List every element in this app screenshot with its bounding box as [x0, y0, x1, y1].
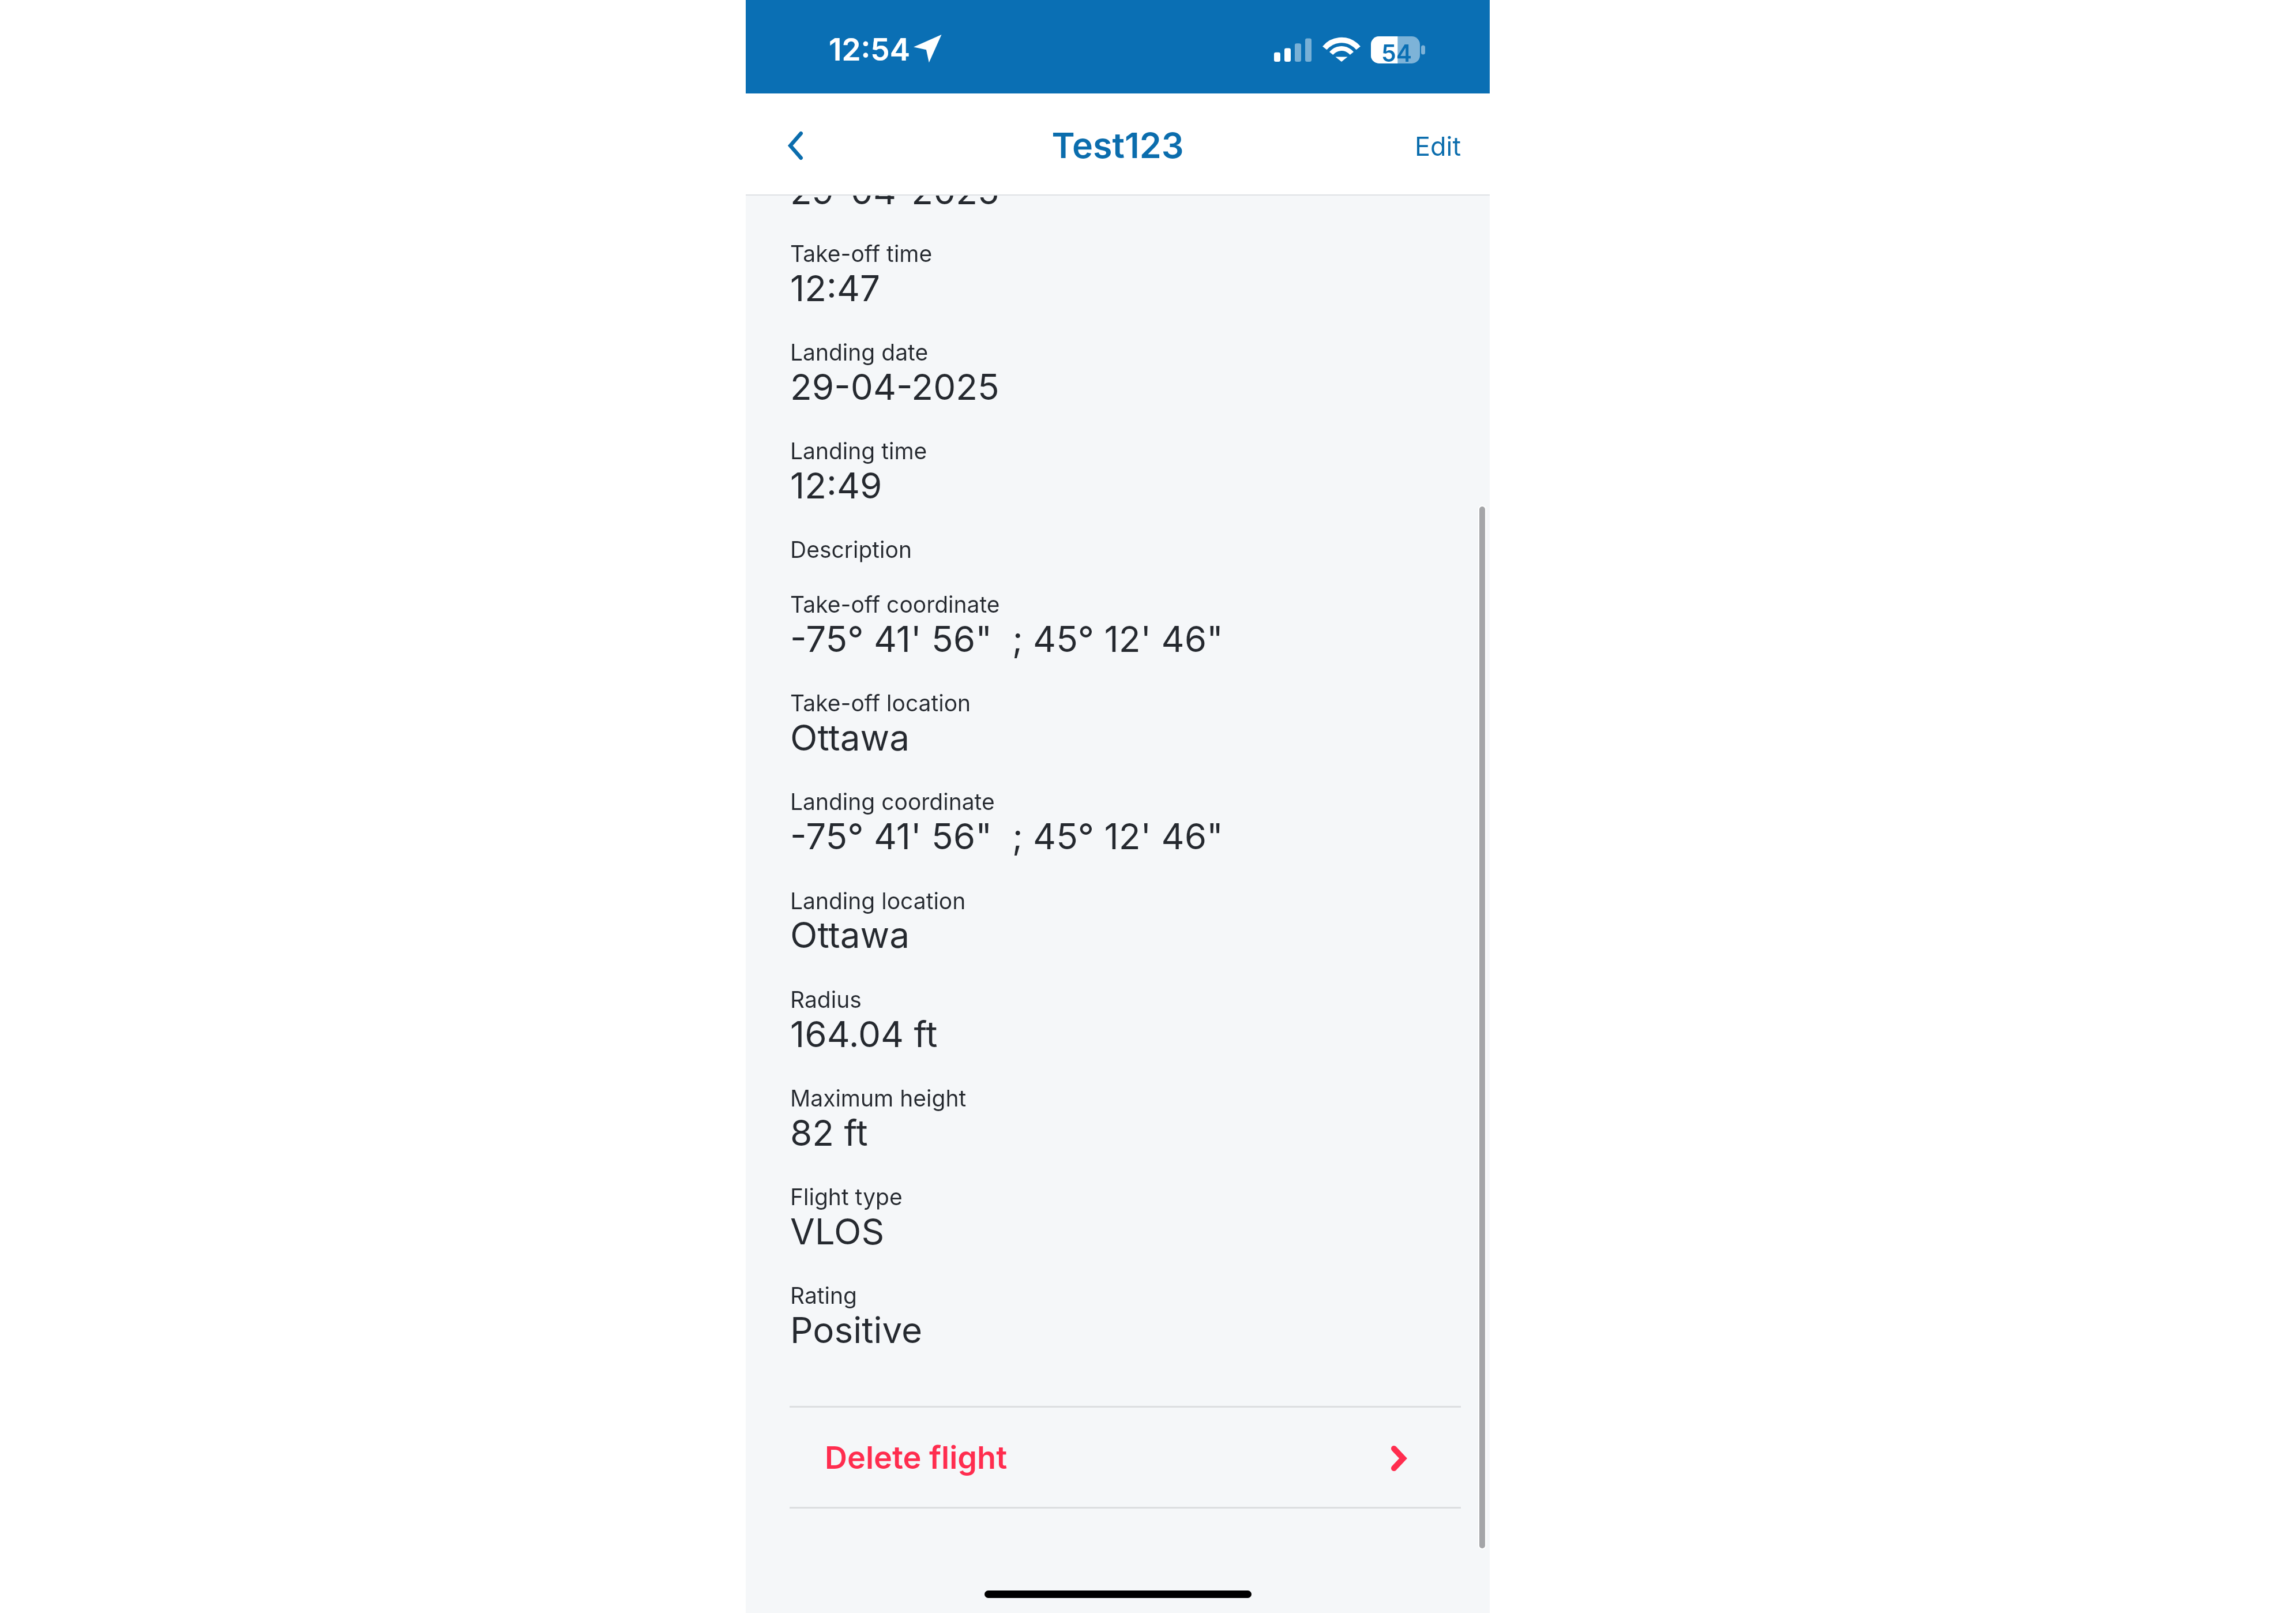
staticText: Test123	[746, 124, 1490, 167]
staticText: 12:47	[790, 267, 881, 310]
staticText: Flight type	[790, 1183, 903, 1210]
staticText: Description	[790, 536, 912, 563]
staticText: 29-04-2025	[790, 170, 999, 213]
staticText: Delete flight	[825, 1439, 1008, 1476]
staticText: 29-04-2025	[790, 365, 999, 408]
staticText: -75° 41' 56" ; 45° 12' 46"	[790, 815, 1223, 858]
staticText: Take-off location	[790, 689, 971, 717]
staticText: Radius	[790, 986, 862, 1013]
staticText: VLOS	[790, 1210, 885, 1253]
staticText: Take-off time	[790, 240, 933, 267]
staticText: Maximum height	[790, 1085, 967, 1112]
staticText: Landing coordinate	[790, 788, 995, 815]
staticText: Edit	[1415, 130, 1461, 162]
staticText: 12:49	[790, 464, 882, 507]
button[interactable]: Delete flight	[746, 1408, 1490, 1507]
staticText: 54	[1381, 39, 1412, 66]
staticText: Take-off coordinate	[790, 591, 1000, 618]
button[interactable]: Back	[760, 114, 823, 177]
staticText: Rating	[790, 1282, 857, 1309]
staticText: Landing location	[790, 887, 966, 914]
staticText: Ottawa	[790, 913, 910, 956]
staticText: Ottawa	[790, 716, 910, 759]
staticText: 12:54	[829, 31, 910, 68]
button[interactable]: Edit	[1382, 110, 1453, 173]
staticText: -75° 41' 56" ; 45° 12' 46"	[790, 617, 1223, 661]
staticText: Landing date	[790, 339, 929, 366]
staticText: Positive	[790, 1308, 923, 1352]
staticText: Landing time	[790, 437, 927, 464]
staticText: 164.04 ft	[790, 1012, 938, 1056]
staticText: 82 ft	[790, 1111, 868, 1154]
